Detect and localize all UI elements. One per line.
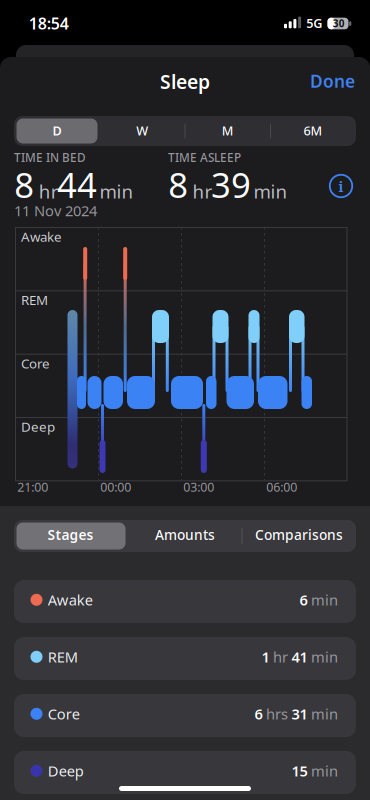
- button[interactable]: 6M: [271, 117, 355, 145]
- staticText: 1: [261, 647, 269, 667]
- staticText: TIME IN BED: [14, 149, 86, 165]
- staticText: 6: [254, 704, 262, 724]
- button[interactable]: More information: [326, 171, 356, 201]
- staticText: 11 Nov 2024: [14, 201, 97, 221]
- staticText: min: [311, 647, 338, 667]
- staticText: i: [338, 177, 343, 196]
- staticText: Deep: [21, 418, 55, 436]
- staticText: hrs: [266, 704, 288, 724]
- staticText: Done: [310, 69, 355, 93]
- staticText: REM: [21, 291, 48, 309]
- staticText: min: [311, 704, 338, 724]
- staticText: M: [222, 122, 234, 139]
- staticText: Core: [48, 704, 80, 724]
- staticText: min: [253, 179, 287, 204]
- staticText: REM: [48, 647, 78, 667]
- staticText: 30: [333, 17, 345, 30]
- button[interactable]: Done: [285, 66, 355, 96]
- staticText: Awake: [21, 227, 62, 246]
- staticText: 5G: [306, 15, 322, 32]
- staticText: 8: [14, 161, 34, 208]
- staticText: 44: [57, 161, 97, 208]
- staticText: Deep: [48, 761, 84, 781]
- staticText: Core: [21, 354, 50, 372]
- staticText: Amounts: [155, 525, 215, 544]
- staticText: Awake: [48, 590, 93, 610]
- button[interactable]: D: [15, 117, 99, 145]
- staticText: 6: [299, 590, 307, 610]
- staticText: 15: [291, 761, 307, 781]
- staticText: 31: [291, 704, 307, 724]
- staticText: min: [311, 590, 338, 610]
- staticText: 41: [291, 647, 307, 667]
- staticText: 06:00: [266, 478, 297, 495]
- staticText: D: [52, 122, 61, 139]
- staticText: W: [136, 122, 148, 139]
- staticText: hr: [39, 179, 59, 204]
- button[interactable]: Stages: [15, 520, 125, 550]
- staticText: 00:00: [100, 478, 131, 495]
- staticText: 39: [211, 161, 251, 208]
- staticText: 03:00: [183, 478, 214, 495]
- button[interactable]: Comparisons: [244, 520, 354, 550]
- button[interactable]: Amounts: [130, 520, 240, 550]
- staticText: 18:54: [29, 12, 69, 34]
- staticText: Stages: [47, 525, 93, 544]
- staticText: 21:00: [17, 478, 48, 495]
- staticText: hr: [192, 179, 212, 204]
- staticText: 6M: [303, 122, 322, 139]
- staticText: 8: [168, 161, 188, 208]
- button[interactable]: M: [186, 117, 270, 145]
- staticText: hr: [273, 647, 288, 667]
- staticText: Sleep: [160, 68, 210, 95]
- staticText: TIME ASLEEP: [168, 149, 241, 165]
- staticText: min: [99, 179, 133, 204]
- staticText: min: [311, 761, 338, 781]
- button[interactable]: W: [100, 117, 184, 145]
- staticText: Comparisons: [255, 525, 343, 544]
